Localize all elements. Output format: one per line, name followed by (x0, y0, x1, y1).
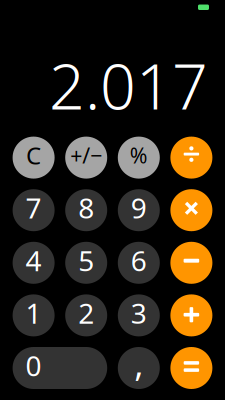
staticText: 2.017 (49, 44, 208, 127)
button[interactable]: 0 (13, 347, 107, 389)
staticText: 7 (26, 189, 42, 226)
staticText: 0 (26, 347, 42, 384)
button[interactable]: Multiply (170, 189, 212, 231)
button[interactable]: 7 (13, 189, 55, 231)
button[interactable]: 8 (65, 189, 107, 231)
staticText: % (130, 141, 148, 169)
staticText: 9 (131, 189, 147, 226)
button[interactable]: +/− (65, 137, 107, 179)
button[interactable]: Equals (170, 347, 212, 389)
staticText: , (134, 340, 143, 386)
button[interactable]: 9 (118, 189, 160, 231)
staticText: 2 (78, 294, 94, 331)
button[interactable]: % (118, 137, 160, 179)
staticText: 5 (78, 242, 94, 279)
button[interactable]: 4 (13, 242, 55, 284)
staticText: +/− (70, 141, 102, 169)
button[interactable]: 5 (65, 242, 107, 284)
staticText: 4 (26, 242, 42, 279)
button[interactable]: Divide (170, 137, 212, 179)
button[interactable]: C (13, 137, 55, 179)
button[interactable]: 6 (118, 242, 160, 284)
button[interactable]: 3 (118, 294, 160, 336)
button[interactable]: Add (170, 294, 212, 336)
staticText: 6 (131, 242, 147, 279)
button[interactable]: Subtract (170, 242, 212, 284)
staticText: 8 (78, 189, 94, 226)
staticText: 1 (26, 294, 42, 331)
staticText: C (26, 139, 41, 171)
button[interactable]: Decimal separator (118, 347, 160, 389)
button[interactable]: 1 (13, 294, 55, 336)
button[interactable]: 2 (65, 294, 107, 336)
staticText: 3 (131, 294, 147, 331)
